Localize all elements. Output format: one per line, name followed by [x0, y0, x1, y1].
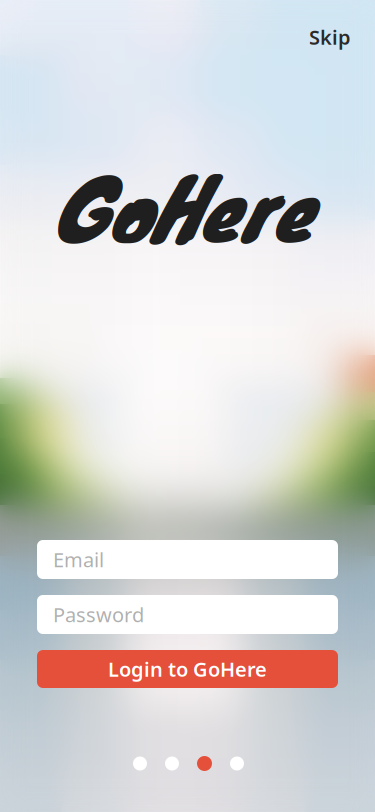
staticText: Email: [53, 546, 104, 573]
button[interactable]: Skip: [304, 21, 356, 53]
staticText: Password: [53, 601, 144, 628]
button[interactable]: Password: [37, 595, 338, 634]
button[interactable]: Login to GoHere: [37, 650, 338, 688]
button[interactable]: Email: [37, 540, 338, 579]
staticText: Login to GoHere: [108, 656, 267, 682]
staticText: Skip: [309, 24, 351, 50]
staticText: GoHere: [58, 142, 316, 270]
